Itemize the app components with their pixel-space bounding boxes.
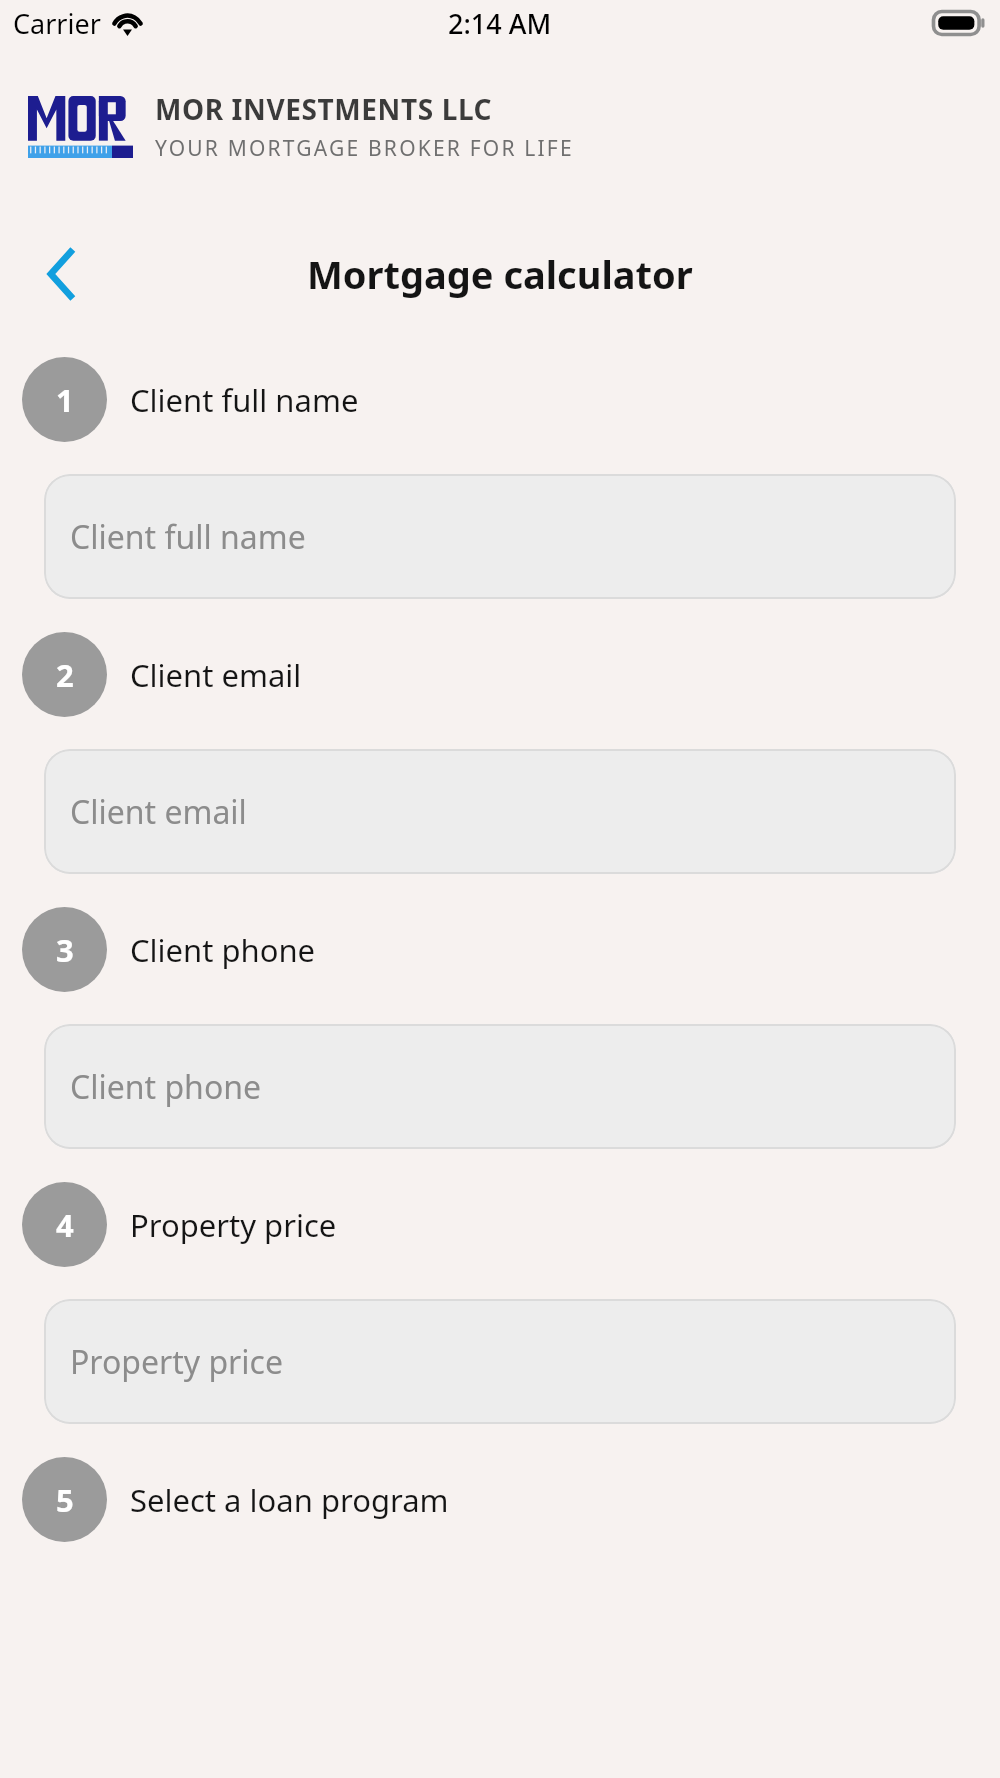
staticText: Client email [130,654,302,696]
button[interactable]: Client phone [44,1024,956,1149]
staticText: Mortgage calculator [307,248,693,300]
button[interactable]: Property price [44,1299,956,1424]
staticText: Client full name [70,515,306,559]
staticText: Property price [70,1340,283,1384]
button[interactable]: 3 [22,907,978,992]
staticText: YOUR MORTGAGE BROKER FOR LIFE [155,134,574,163]
button[interactable]: 1 [22,357,978,442]
staticText: Client phone [70,1065,262,1109]
staticText: 1 [56,379,74,421]
staticText: Client full name [130,379,359,421]
staticText: Select a loan program [130,1479,449,1521]
button[interactable]: Client email [44,749,956,874]
staticText: Client email [70,790,247,834]
staticText: Carrier [13,5,101,42]
staticText: 3 [56,929,74,971]
button[interactable]: Client full name [44,474,956,599]
staticText: 2:14 AM [448,5,552,42]
staticText: 2 [56,654,74,696]
button[interactable]: 4 [22,1182,978,1267]
staticText: MOR INVESTMENTS LLC [155,90,493,128]
staticText: 5 [56,1479,74,1521]
staticText: Property price [130,1204,337,1246]
staticText: 4 [56,1204,74,1246]
staticText: Client phone [130,929,316,971]
button[interactable]: 5 [22,1457,978,1542]
button[interactable]: 2 [22,632,978,717]
button[interactable]: Back [30,243,92,305]
